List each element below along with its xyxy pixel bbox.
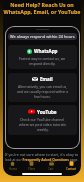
staticText: We always respond within 24 hours [10,34,75,39]
button[interactable]: YouTube [8,105,77,135]
staticText: Email [40,76,53,82]
staticText: YouTube [37,109,57,115]
staticText: Need Help? Reach Us on [3,1,81,8]
other: Plans [29,161,34,166]
button[interactable]: look at our Frequently Asked Questions p… [5,157,79,161]
other: Email [32,76,38,82]
staticText: If you're not sure where to start, it's … [5,152,79,157]
other: YouTube [28,108,35,115]
staticText: WhatsApp, Email, or YouTube [3,8,81,15]
staticText: Alternatively, you can email us, [18,84,68,89]
other: Contact [69,161,74,166]
staticText: Contact [66,167,77,171]
button[interactable]: WhatsApp [8,45,77,69]
other: Home [10,161,15,166]
staticText: Cart [48,167,54,171]
staticText: where we post video tutorials [19,122,66,127]
button[interactable]: Email [8,73,77,102]
other: WhatsApp [27,49,32,54]
staticText: Plans [28,167,36,171]
button[interactable]: Home [3,161,22,171]
staticText: WhatsApp [34,48,58,54]
staticText: Fastest way to contact us, we [19,56,66,61]
button[interactable]: Cart [41,161,61,171]
staticText: few hours. [34,94,51,99]
other: Cart [49,161,54,166]
button[interactable]: Plans [22,161,41,171]
staticText: respond directly. [29,61,56,66]
staticText: Check our YouTube channel [20,117,65,122]
staticText: weekly. [37,127,49,132]
button[interactable]: Contact [61,161,81,171]
staticText: Home [9,167,17,171]
staticText: and we usually respond within a [17,89,69,94]
